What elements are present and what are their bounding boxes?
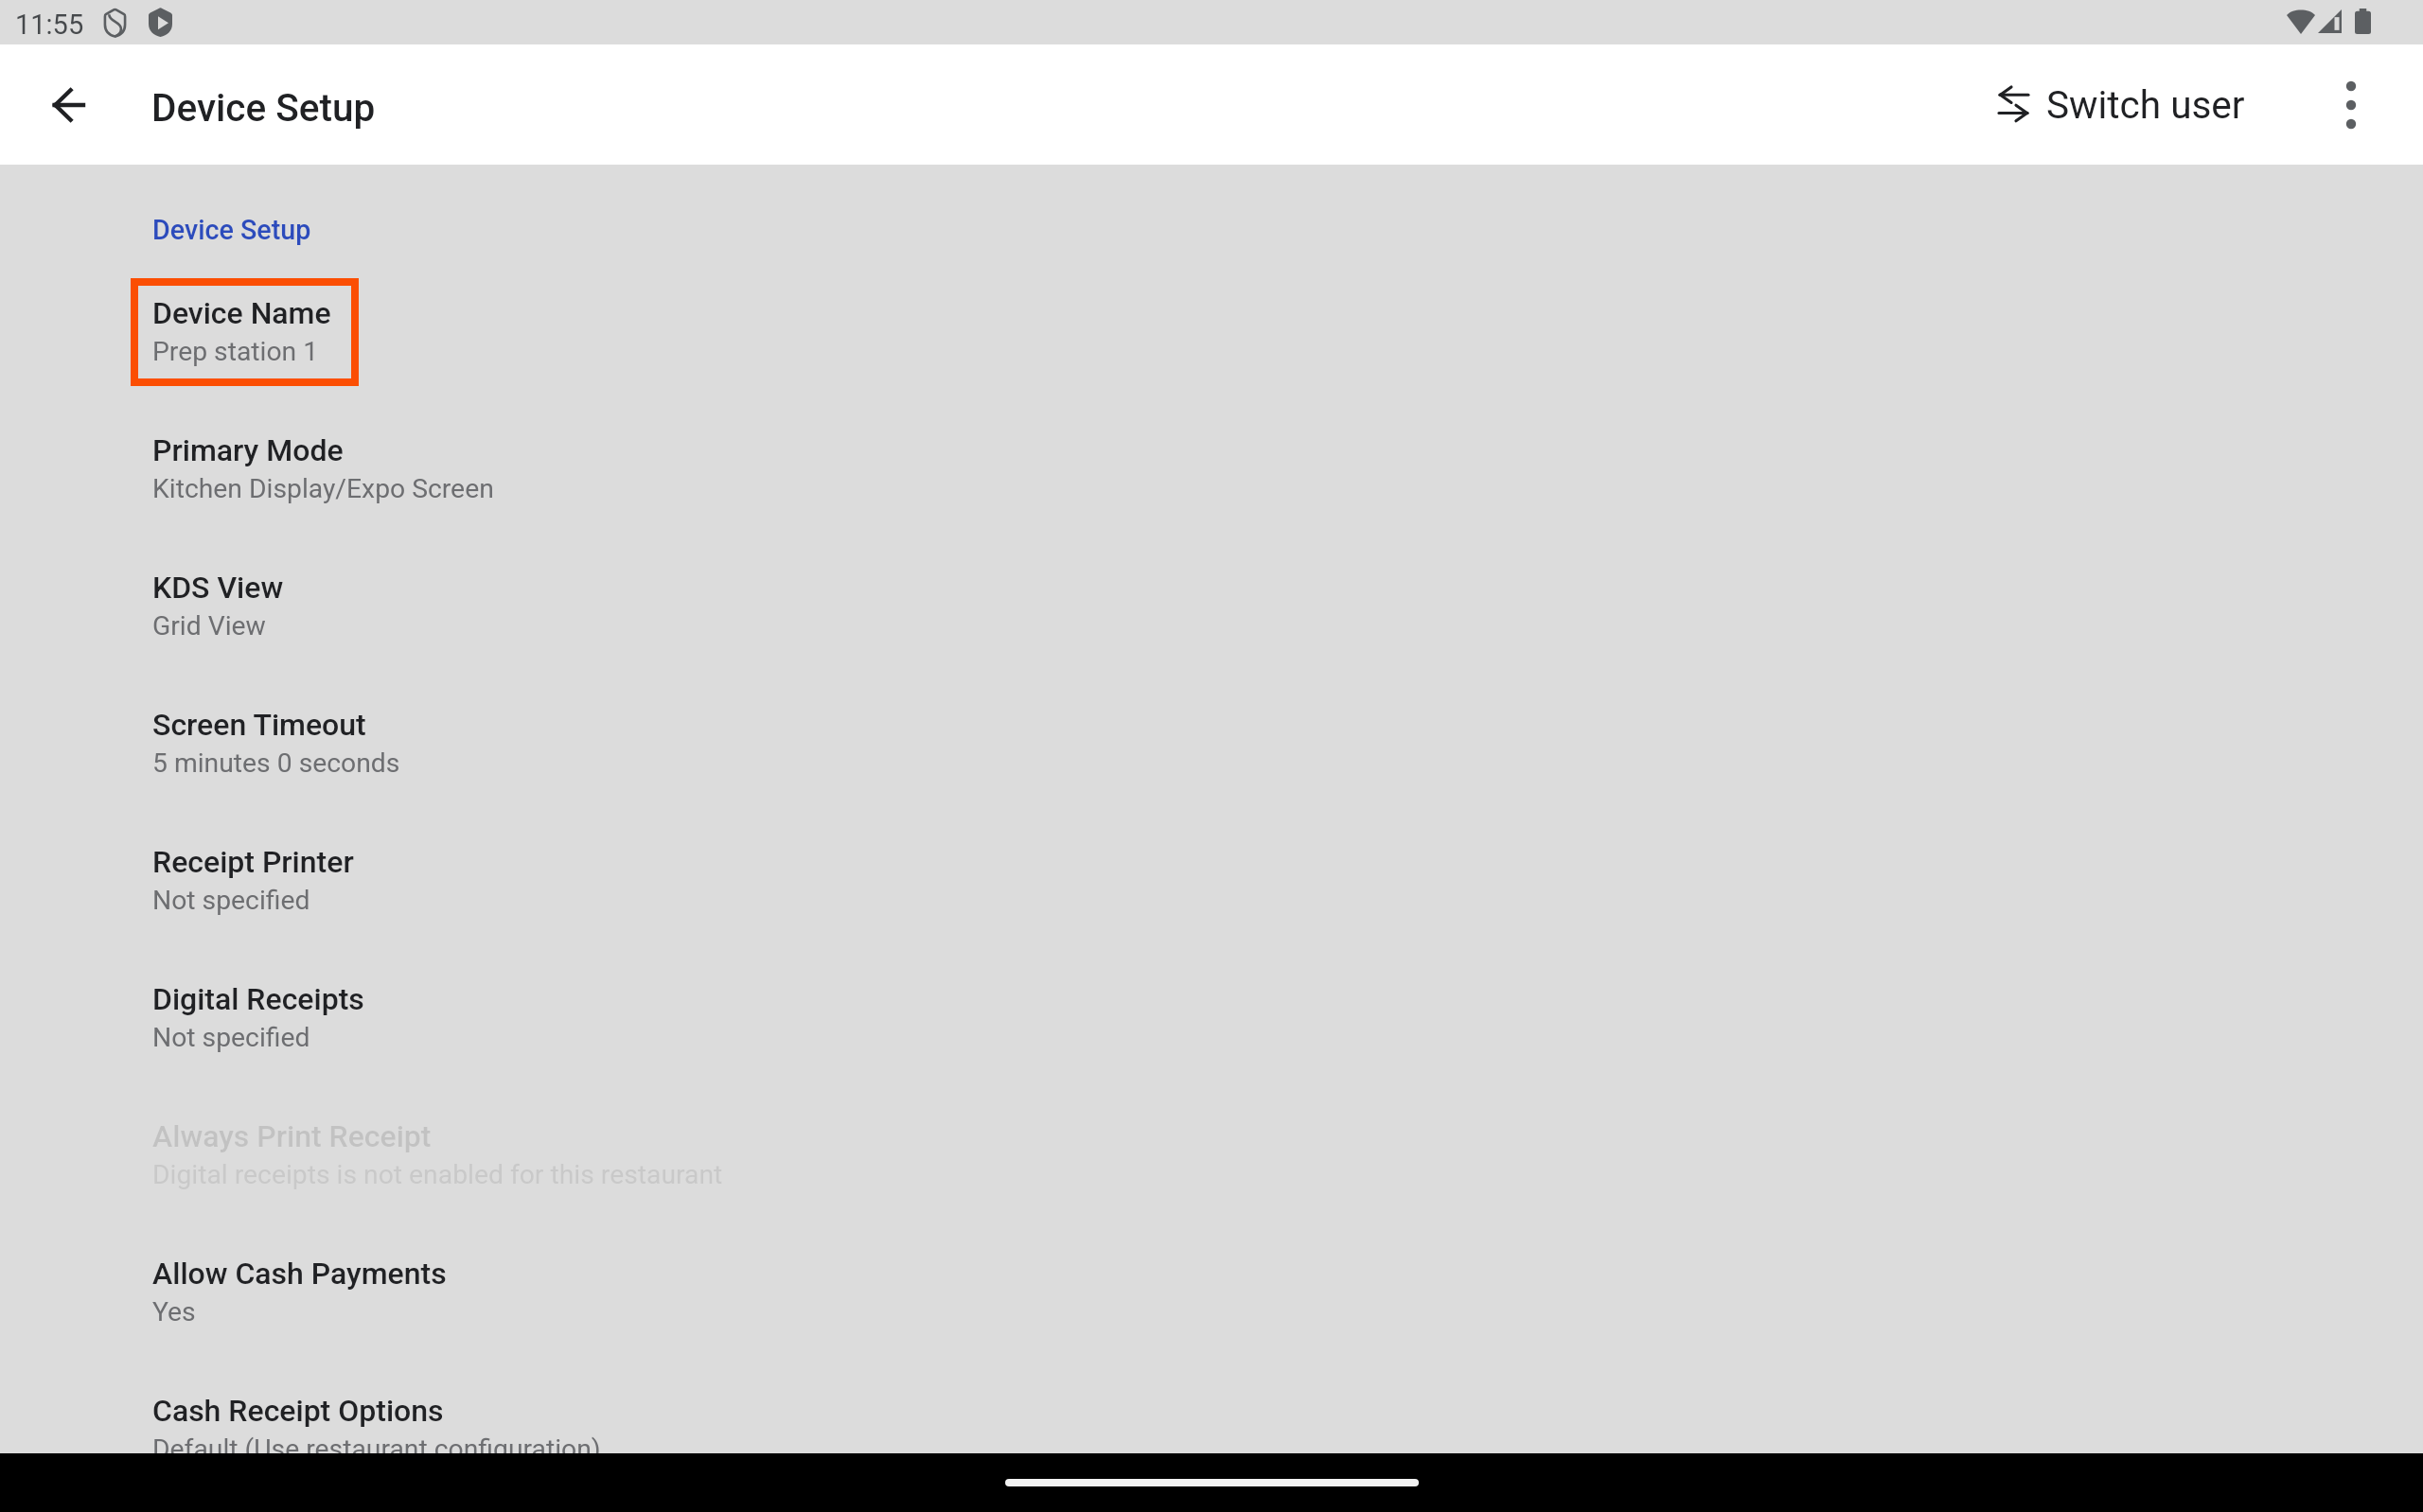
button[interactable]: Device Setup [152, 214, 311, 246]
staticText: Digital Receipts [152, 981, 364, 1017]
button[interactable]: Back [36, 73, 100, 137]
button[interactable]: Device Name [131, 278, 359, 386]
button[interactable]: Screen Timeout [0, 690, 2423, 798]
staticText: Switch user [2046, 82, 2245, 127]
staticText: Default (Use restaurant configuration) [152, 1433, 601, 1465]
staticText: Grid View [152, 610, 266, 642]
staticText: Always Print Receipt [152, 1118, 432, 1154]
staticText: Device Setup [151, 85, 376, 130]
staticText: Receipt Printer [152, 844, 354, 880]
button[interactable]: Digital Receipts [0, 964, 2423, 1072]
staticText: Yes [152, 1296, 196, 1327]
staticText: Cash Receipt Options [152, 1393, 444, 1429]
button[interactable]: KDS View [0, 553, 2423, 660]
button[interactable]: More options [2319, 73, 2383, 137]
button[interactable]: Primary Mode [0, 415, 2423, 523]
staticText: 11:55 [15, 9, 84, 41]
staticText: Allow Cash Payments [152, 1256, 447, 1292]
staticText: Digital receipts is not enabled for this… [152, 1159, 723, 1190]
staticText: Prep station 1 [152, 336, 319, 367]
staticText: Not specified [152, 1022, 310, 1053]
button[interactable]: Receipt Printer [0, 827, 2423, 935]
staticText: Screen Timeout [152, 707, 366, 743]
staticText: Primary Mode [152, 432, 344, 468]
staticText: 5 minutes 0 seconds [152, 747, 400, 779]
button[interactable]: Allow Cash Payments [0, 1239, 2423, 1346]
staticText: Not specified [152, 885, 310, 916]
button[interactable]: Switch user [1999, 64, 2245, 144]
staticText: Device Name [152, 295, 331, 331]
staticText: Kitchen Display/Expo Screen [152, 473, 494, 504]
button[interactable]: Cash Receipt Options [0, 1376, 2423, 1484]
staticText: KDS View [152, 570, 284, 606]
